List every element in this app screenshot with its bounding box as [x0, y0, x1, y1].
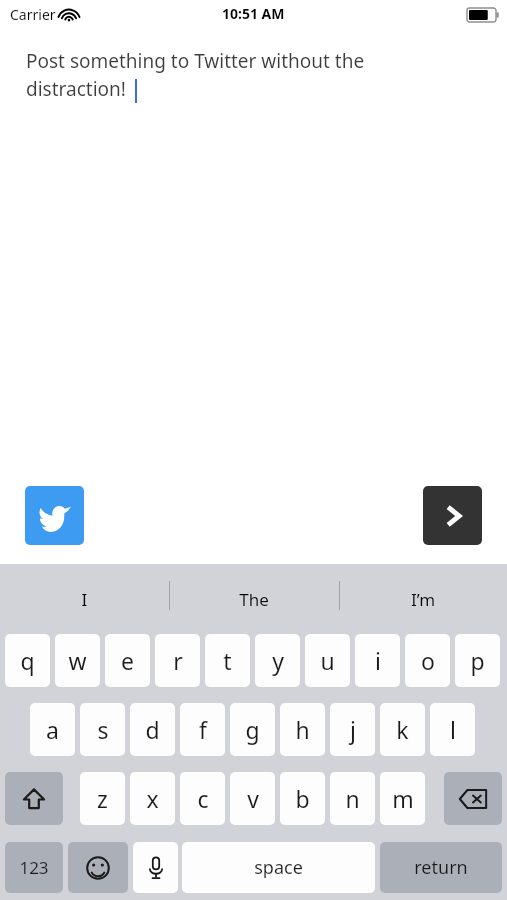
- button[interactable]: y: [255, 634, 300, 687]
- button[interactable]: u: [305, 634, 350, 687]
- button[interactable]: a: [30, 703, 75, 756]
- button[interactable]: Shift: [5, 772, 63, 825]
- staticText: q: [20, 645, 35, 676]
- staticText: return: [414, 855, 468, 880]
- button[interactable]: 123: [5, 842, 63, 893]
- staticText: l: [450, 714, 456, 745]
- staticText: c: [197, 783, 209, 814]
- button[interactable]: h: [280, 703, 325, 756]
- button[interactable]: w: [55, 634, 100, 687]
- staticText: space: [254, 855, 303, 880]
- staticText: z: [97, 783, 108, 814]
- button[interactable]: Share to Twitter: [25, 486, 84, 545]
- button[interactable]: n: [330, 772, 375, 825]
- button[interactable]: g: [230, 703, 275, 756]
- button[interactable]: Emoji: [68, 842, 128, 893]
- button[interactable]: r: [155, 634, 200, 687]
- staticText: s: [97, 714, 109, 745]
- staticText: m: [392, 783, 414, 814]
- staticText: r: [173, 645, 183, 676]
- staticText: n: [345, 783, 360, 814]
- staticText: b: [295, 783, 310, 814]
- button[interactable]: t: [205, 634, 250, 687]
- button[interactable]: I’m: [339, 588, 507, 611]
- button[interactable]: f: [180, 703, 225, 756]
- button[interactable]: b: [280, 772, 325, 825]
- button[interactable]: j: [330, 703, 375, 756]
- staticText: a: [46, 714, 59, 745]
- staticText: v: [247, 783, 259, 814]
- button[interactable]: z: [80, 772, 125, 825]
- button[interactable]: d: [130, 703, 175, 756]
- staticText: k: [396, 714, 409, 745]
- button[interactable]: k: [380, 703, 425, 756]
- button[interactable]: Dictate: [133, 842, 178, 893]
- button[interactable]: o: [405, 634, 450, 687]
- staticText: Carrier: [10, 5, 56, 24]
- button[interactable]: x: [130, 772, 175, 825]
- button[interactable]: Next: [423, 486, 482, 545]
- button[interactable]: s: [80, 703, 125, 756]
- staticText: j: [350, 714, 356, 745]
- button[interactable]: p: [455, 634, 500, 687]
- staticText: o: [421, 645, 435, 676]
- button[interactable]: The: [169, 588, 339, 611]
- staticText: y: [272, 645, 284, 676]
- staticText: x: [146, 783, 159, 814]
- button[interactable]: space: [182, 842, 375, 893]
- button[interactable]: i: [355, 634, 400, 687]
- staticText: 123: [19, 856, 49, 879]
- staticText: d: [145, 714, 160, 745]
- staticText: h: [295, 714, 310, 745]
- staticText: t: [223, 645, 232, 676]
- staticText: e: [121, 645, 134, 676]
- button[interactable]: c: [180, 772, 225, 825]
- button[interactable]: q: [5, 634, 50, 687]
- staticText: i: [375, 645, 381, 676]
- staticText: u: [320, 645, 335, 676]
- staticText: w: [68, 645, 87, 676]
- button[interactable]: m: [380, 772, 425, 825]
- button[interactable]: I: [0, 588, 169, 611]
- staticText: p: [470, 645, 485, 676]
- staticText: 10:51 AM: [222, 4, 285, 23]
- button[interactable]: l: [430, 703, 475, 756]
- button[interactable]: v: [230, 772, 275, 825]
- button[interactable]: Backspace: [444, 772, 502, 825]
- button[interactable]: return: [380, 842, 502, 893]
- staticText: f: [199, 714, 207, 745]
- staticText: Post something to Twitter without the di…: [26, 48, 365, 102]
- staticText: g: [245, 714, 260, 745]
- button[interactable]: e: [105, 634, 150, 687]
